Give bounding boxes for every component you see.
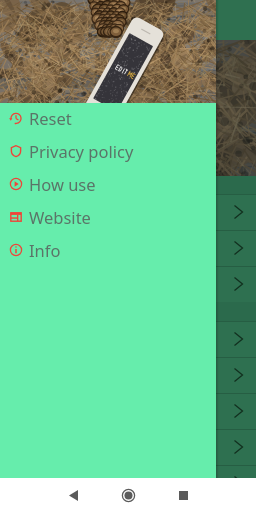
staticText: Privacy policy (29, 140, 134, 162)
staticText: Website (29, 206, 91, 228)
button[interactable]: How use (0, 167, 216, 200)
button[interactable] (0, 429, 256, 465)
button[interactable] (0, 194, 256, 230)
button[interactable] (0, 230, 256, 266)
button[interactable] (0, 357, 256, 393)
staticText: Reset (29, 107, 72, 129)
button[interactable]: Privacy policy (0, 134, 216, 167)
button[interactable] (0, 266, 256, 302)
button[interactable]: Website (0, 200, 216, 233)
button[interactable]: Recent apps (173, 485, 193, 505)
button[interactable]: Home (118, 485, 138, 505)
button[interactable]: Info (0, 233, 216, 266)
button[interactable] (0, 321, 256, 357)
button[interactable] (0, 465, 256, 501)
button[interactable]: Back (63, 485, 83, 505)
staticText: Info (29, 239, 61, 261)
button[interactable] (0, 393, 256, 429)
staticText: How use (29, 173, 96, 195)
button[interactable]: Reset (0, 101, 216, 134)
